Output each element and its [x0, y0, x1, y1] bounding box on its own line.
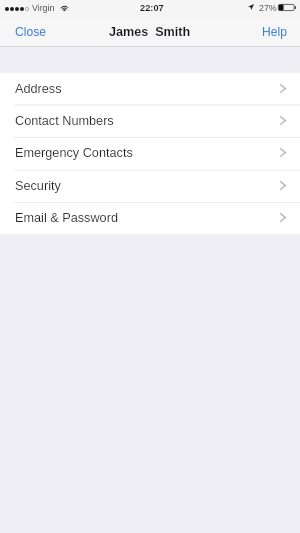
button[interactable]: Contact Numbers [0, 105, 300, 137]
button[interactable]: Close [0, 21, 56, 43]
staticText: 27% [259, 3, 277, 13]
staticText: Close [15, 25, 46, 39]
button[interactable]: Address [0, 73, 300, 105]
button[interactable]: Email & Password [0, 202, 300, 234]
staticText: Security [15, 179, 61, 193]
staticText: Virgin [32, 3, 55, 13]
staticText: James Smith [109, 25, 191, 39]
staticText: 22:07 [140, 3, 164, 13]
button[interactable]: Help [252, 21, 300, 43]
staticText: Help [262, 25, 287, 39]
staticText: Contact Numbers [15, 114, 114, 128]
staticText: Address [15, 82, 62, 96]
staticText: Email & Password [15, 211, 118, 225]
staticText: Emergency Contacts [15, 146, 133, 160]
button[interactable]: Emergency Contacts [0, 137, 300, 169]
button[interactable]: Security [0, 170, 300, 202]
